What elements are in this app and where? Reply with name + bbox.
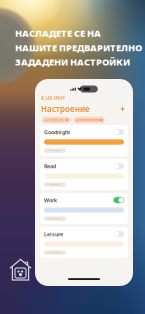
button[interactable]: Дневна светлина	[74, 117, 105, 123]
button[interactable]: Read	[40, 159, 128, 190]
staticText: LED STRIP	[45, 95, 64, 101]
button[interactable]: Слънчев лъч	[42, 117, 71, 123]
staticText: Отложено час	[49, 150, 60, 151]
staticText: ЗАДАДЕНИ НАСТРОЙКИ	[15, 56, 130, 68]
staticText: Work	[44, 197, 57, 204]
staticText: Отложено час	[49, 218, 60, 219]
staticText: Настроение	[41, 104, 90, 114]
staticText: Отложено час	[49, 184, 60, 185]
button[interactable]: Work	[40, 193, 128, 224]
staticText: Дневна светлина	[76, 118, 99, 122]
button[interactable]: LED STRIP	[35, 93, 133, 103]
staticText: Goodnight	[44, 129, 70, 136]
button[interactable]: Add preset	[118, 104, 127, 113]
staticText: Слънчев лъч	[45, 118, 65, 122]
staticText: Leisure	[44, 231, 63, 238]
staticText: Отложено час	[49, 252, 60, 253]
button[interactable]: Goodnight	[40, 125, 128, 156]
staticText: НАШИТЕ ПРЕДВАРИТЕЛНО	[15, 41, 142, 54]
button[interactable]: Leisure	[40, 227, 128, 258]
staticText: НАСЛАДЕТЕ СЕ НА	[15, 27, 101, 39]
staticText: Read	[44, 163, 56, 170]
